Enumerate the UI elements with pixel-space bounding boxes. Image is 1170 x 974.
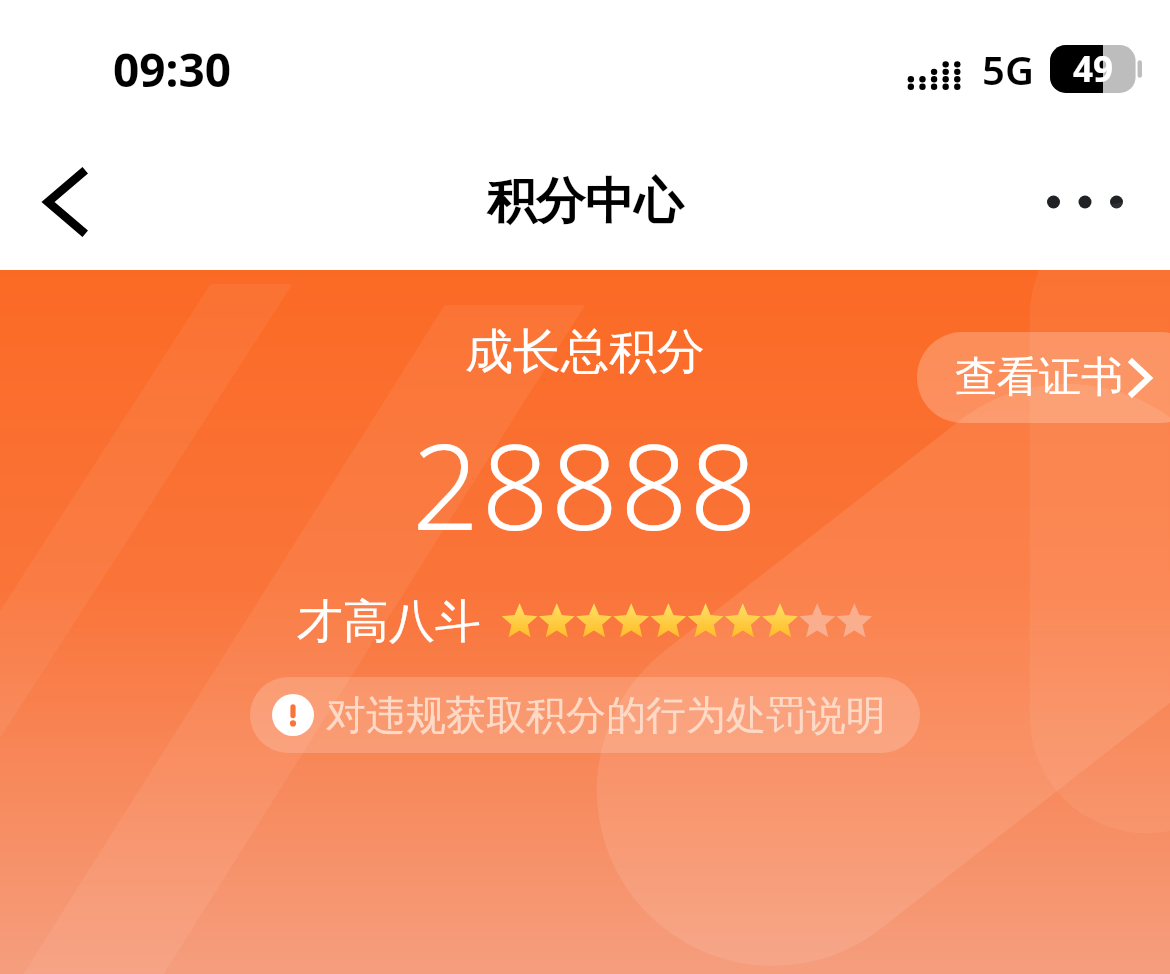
staticText: 成长总积分 <box>465 322 705 382</box>
button[interactable]: 查看证书 <box>917 332 1170 423</box>
button[interactable]: 对违规获取积分的行为处罚说明 <box>250 677 920 753</box>
staticText: 09:30 <box>113 38 232 101</box>
staticText: 才高八斗 <box>297 593 481 651</box>
button[interactable]: Back <box>10 147 120 257</box>
staticText: 5G <box>982 42 1034 96</box>
staticText: 积分中心 <box>487 171 683 233</box>
staticText: 49 <box>1073 45 1114 93</box>
staticText: 查看证书 <box>955 351 1123 404</box>
button[interactable]: More options <box>1030 147 1140 257</box>
staticText: 对违规获取积分的行为处罚说明 <box>326 690 886 740</box>
staticText: 28888 <box>412 404 759 565</box>
